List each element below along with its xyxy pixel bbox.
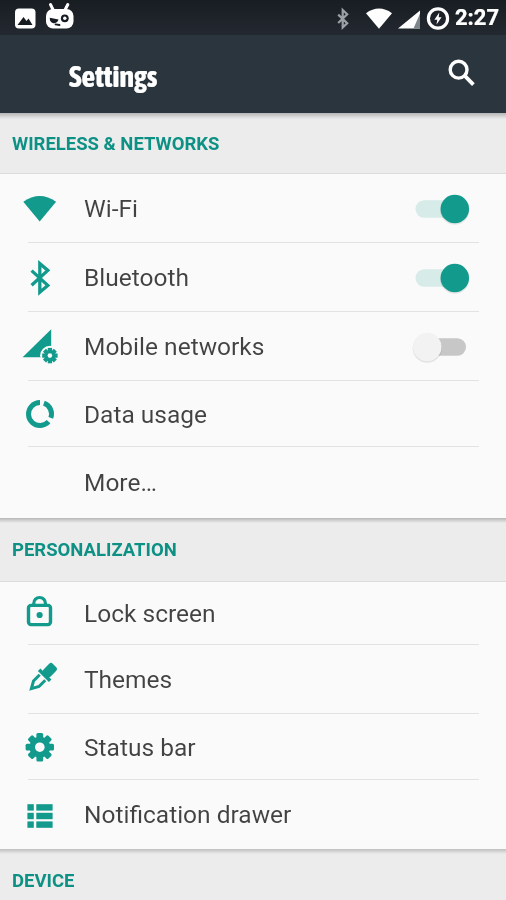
- staticText: DEVICE: [12, 870, 75, 892]
- staticText: WIRELESS & NETWORKS: [12, 133, 220, 155]
- staticText: Bluetooth: [84, 263, 189, 292]
- staticText: Mobile networks: [84, 332, 265, 361]
- staticText: 2:27: [455, 5, 500, 31]
- button[interactable]: [413, 194, 470, 224]
- button[interactable]: [413, 332, 470, 362]
- staticText: Data usage: [84, 400, 208, 429]
- button[interactable]: [440, 52, 484, 96]
- button[interactable]: More…: [0, 447, 506, 518]
- button[interactable]: Lock screen: [0, 582, 506, 645]
- staticText: Notification drawer: [84, 800, 292, 829]
- button[interactable]: Bluetooth: [0, 243, 506, 312]
- staticText: Status bar: [84, 733, 196, 762]
- button[interactable]: Notification drawer: [0, 780, 506, 849]
- staticText: Themes: [84, 665, 173, 694]
- button[interactable]: Themes: [0, 645, 506, 714]
- staticText: Wi-Fi: [84, 194, 138, 223]
- button[interactable]: Data usage: [0, 381, 506, 447]
- staticText: Settings: [69, 59, 158, 93]
- staticText: More…: [84, 468, 157, 497]
- button[interactable]: Mobile networks: [0, 312, 506, 381]
- staticText: PERSONALIZATION: [12, 539, 177, 561]
- button[interactable]: Wi-Fi: [0, 174, 506, 243]
- button[interactable]: Status bar: [0, 714, 506, 780]
- button[interactable]: [413, 263, 470, 293]
- staticText: Lock screen: [84, 599, 216, 628]
